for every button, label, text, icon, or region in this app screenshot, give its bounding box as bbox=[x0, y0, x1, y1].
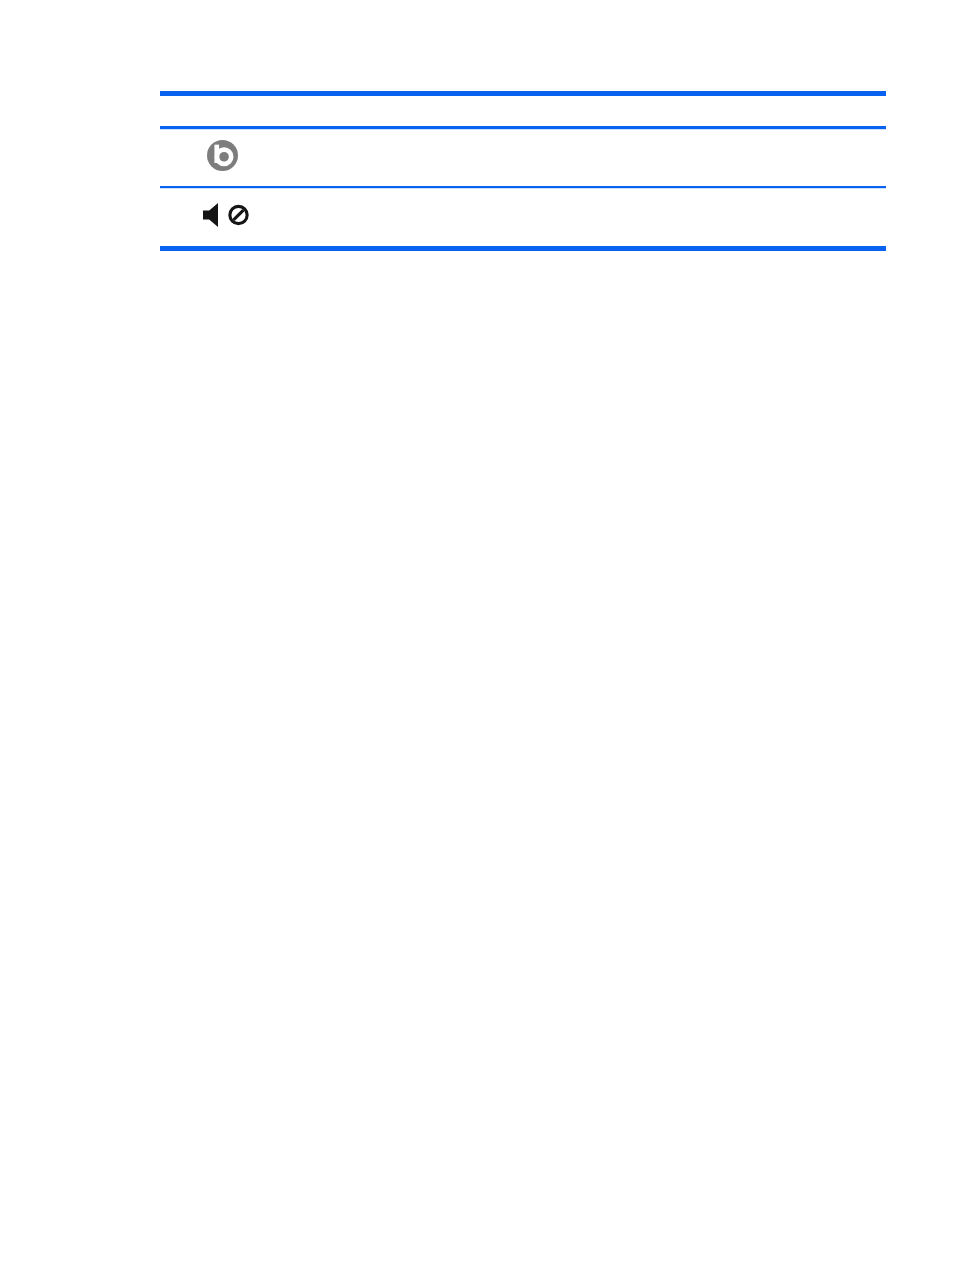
button[interactable]: Beats Audio bbox=[160, 129, 886, 186]
button[interactable]: Mute speaker bbox=[160, 188, 886, 246]
